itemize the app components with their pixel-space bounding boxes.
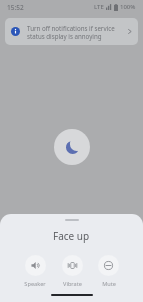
staticText: Face up [53,229,90,243]
button[interactable]: Speaker [22,254,48,289]
staticText: LTE [94,3,104,11]
staticText: Speaker [24,280,46,288]
button[interactable]: Vibrate [60,254,85,289]
staticText: status display is annoying [27,32,102,40]
staticText: 100% [120,3,136,11]
staticText: Turn off notifications if service [27,24,115,32]
staticText: Mute [102,280,116,288]
button[interactable]: Mute [96,254,121,289]
staticText: Vibrate [63,280,82,288]
button[interactable]: Turn off notifications if service [5,18,138,45]
button[interactable]: Do not disturb [54,129,90,165]
staticText: 15:52 [7,3,24,12]
